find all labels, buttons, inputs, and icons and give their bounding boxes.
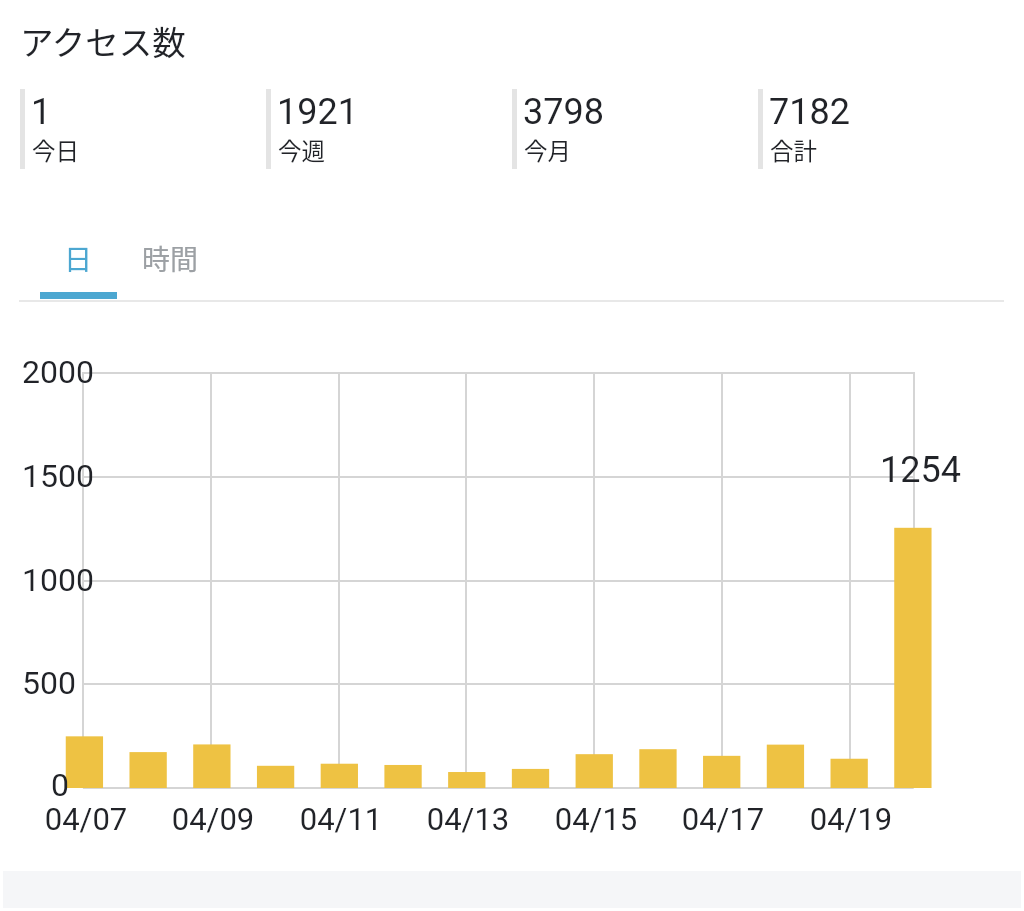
button[interactable]: 3798	[512, 89, 758, 171]
staticText: 04/11	[271, 801, 411, 837]
staticText: 合計	[770, 133, 817, 167]
staticText: 時間	[142, 238, 199, 279]
button[interactable]: 日	[40, 224, 117, 292]
staticText: 1500	[22, 457, 94, 495]
staticText: 7182	[769, 91, 850, 133]
staticText: 04/19	[781, 801, 921, 837]
staticText: 04/07	[16, 801, 156, 837]
staticText: 04/15	[526, 801, 666, 837]
staticText: 2000	[22, 353, 94, 391]
staticText: 1	[31, 91, 52, 133]
staticText: 今日	[32, 133, 79, 167]
staticText: 1921	[277, 91, 358, 133]
staticText: 3798	[523, 91, 604, 133]
staticText: 1254	[880, 449, 961, 491]
button[interactable]: 1	[20, 89, 266, 171]
staticText: アクセス数	[20, 16, 186, 65]
staticText: 0	[51, 766, 69, 804]
staticText: 04/17	[653, 801, 793, 837]
staticText: 今週	[278, 133, 325, 167]
staticText: 日	[64, 238, 93, 279]
staticText: 500	[22, 664, 76, 702]
staticText: 04/13	[398, 801, 538, 837]
staticText: 04/09	[143, 801, 283, 837]
button[interactable]: 時間	[118, 224, 223, 292]
staticText: 今月	[524, 133, 571, 167]
button[interactable]: 1921	[266, 89, 512, 171]
staticText: 1000	[22, 561, 94, 599]
button[interactable]: 7182	[758, 89, 1004, 171]
